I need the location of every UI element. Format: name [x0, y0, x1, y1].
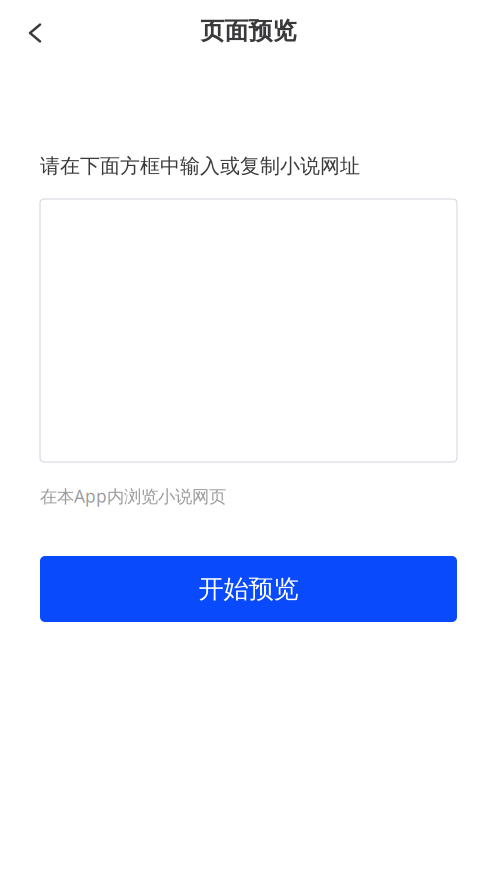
staticText: 在本App内浏览小说网页 [40, 484, 226, 507]
staticText: 开始预览 [198, 573, 298, 604]
button[interactable]: Back [12, 10, 58, 56]
button[interactable]: 开始预览 [40, 556, 457, 622]
staticText: 页面预览 [200, 16, 296, 46]
staticText: 请在下面方框中输入或复制小说网址 [40, 154, 360, 178]
